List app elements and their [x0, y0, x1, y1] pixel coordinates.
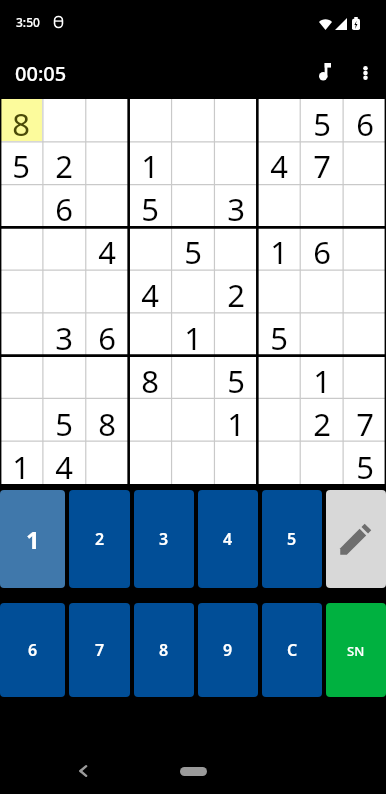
button[interactable]: Pencil note mode — [326, 490, 386, 588]
button[interactable]: 1 — [171, 312, 214, 355]
button[interactable]: 6 — [0, 603, 65, 697]
button[interactable] — [214, 226, 257, 269]
button[interactable]: 5 — [0, 141, 42, 183]
button[interactable]: 1 — [0, 490, 65, 588]
button[interactable]: 5 — [262, 490, 322, 588]
button[interactable] — [171, 269, 214, 312]
button[interactable] — [214, 441, 257, 484]
button[interactable] — [85, 355, 128, 398]
button[interactable] — [171, 355, 214, 398]
button[interactable]: 7 — [343, 398, 386, 441]
button[interactable] — [257, 355, 300, 398]
button[interactable] — [214, 99, 257, 141]
staticText: 2 — [95, 528, 105, 550]
button[interactable]: 4 — [128, 269, 171, 312]
button[interactable]: 1 — [214, 398, 257, 441]
button[interactable] — [85, 99, 128, 141]
staticText: 5 — [270, 317, 288, 359]
button[interactable]: 4 — [85, 226, 128, 269]
button[interactable] — [171, 441, 214, 484]
button[interactable] — [128, 226, 171, 269]
button[interactable] — [0, 312, 42, 355]
button[interactable] — [257, 441, 300, 484]
button[interactable] — [128, 312, 171, 355]
button[interactable] — [171, 99, 214, 141]
button[interactable]: 6 — [343, 99, 386, 141]
button[interactable] — [171, 398, 214, 441]
button[interactable]: 8 — [85, 398, 128, 441]
button[interactable]: 5 — [42, 398, 85, 441]
button[interactable]: 3 — [134, 490, 194, 588]
button[interactable]: More options — [345, 51, 385, 91]
button[interactable] — [214, 312, 257, 355]
button[interactable] — [42, 99, 85, 141]
button[interactable]: 6 — [42, 183, 85, 226]
button[interactable]: 8 — [134, 603, 194, 697]
button[interactable] — [0, 269, 42, 312]
button[interactable]: Home — [163, 753, 223, 789]
button[interactable]: C — [262, 603, 322, 697]
button[interactable]: 2 — [69, 490, 130, 588]
button[interactable]: 4 — [42, 441, 85, 484]
button[interactable] — [257, 398, 300, 441]
button[interactable]: 3 — [42, 312, 85, 355]
button[interactable]: 1 — [257, 226, 300, 269]
button[interactable]: 3 — [214, 183, 257, 226]
button[interactable]: 5 — [128, 183, 171, 226]
button[interactable] — [171, 141, 214, 183]
button[interactable]: 5 — [214, 355, 257, 398]
button[interactable] — [0, 183, 42, 226]
button[interactable]: 1 — [128, 141, 171, 183]
button[interactable]: 6 — [85, 312, 128, 355]
button[interactable] — [300, 269, 343, 312]
button[interactable]: 8 — [128, 355, 171, 398]
button[interactable]: SN — [326, 603, 386, 697]
button[interactable] — [257, 99, 300, 141]
button[interactable]: Back — [65, 753, 101, 789]
button[interactable] — [343, 269, 386, 312]
button[interactable] — [343, 226, 386, 269]
button[interactable]: 1 — [0, 441, 42, 484]
button[interactable] — [85, 141, 128, 183]
button[interactable] — [128, 441, 171, 484]
button[interactable]: 1 — [300, 355, 343, 398]
button[interactable]: 4 — [257, 141, 300, 183]
button[interactable] — [300, 312, 343, 355]
button[interactable] — [300, 441, 343, 484]
button[interactable]: Sound — [305, 51, 345, 91]
button[interactable] — [343, 312, 386, 355]
button[interactable]: 7 — [69, 603, 130, 697]
button[interactable] — [257, 183, 300, 226]
button[interactable]: 2 — [300, 398, 343, 441]
button[interactable]: 8 — [0, 99, 42, 141]
staticText: 3 — [159, 528, 169, 550]
button[interactable] — [0, 355, 42, 398]
button[interactable] — [343, 183, 386, 226]
button[interactable] — [0, 226, 42, 269]
button[interactable]: 7 — [300, 141, 343, 183]
button[interactable]: 6 — [300, 226, 343, 269]
button[interactable] — [85, 269, 128, 312]
button[interactable] — [42, 355, 85, 398]
button[interactable] — [85, 183, 128, 226]
button[interactable]: 5 — [343, 441, 386, 484]
button[interactable] — [343, 355, 386, 398]
button[interactable] — [171, 183, 214, 226]
button[interactable] — [343, 141, 386, 183]
button[interactable]: 5 — [257, 312, 300, 355]
button[interactable]: 5 — [171, 226, 214, 269]
button[interactable] — [42, 269, 85, 312]
button[interactable]: 2 — [42, 141, 85, 183]
button[interactable] — [85, 441, 128, 484]
button[interactable] — [42, 226, 85, 269]
button[interactable] — [257, 269, 300, 312]
button[interactable]: 9 — [198, 603, 258, 697]
button[interactable] — [128, 99, 171, 141]
button[interactable] — [128, 398, 171, 441]
button[interactable] — [214, 141, 257, 183]
button[interactable]: 5 — [300, 99, 343, 141]
button[interactable] — [0, 398, 42, 441]
button[interactable]: 2 — [214, 269, 257, 312]
button[interactable] — [300, 183, 343, 226]
button[interactable]: 4 — [198, 490, 258, 588]
